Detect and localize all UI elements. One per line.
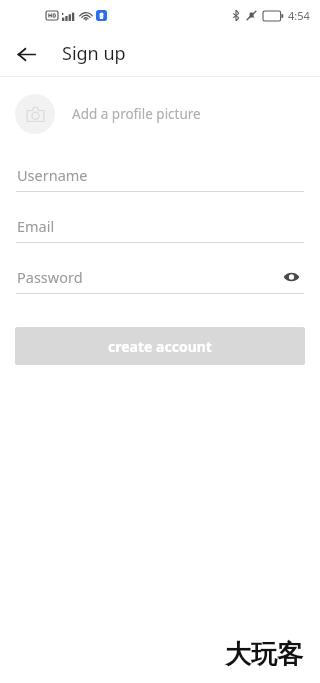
staticText: Password: [17, 267, 83, 287]
staticText: Username: [17, 165, 88, 185]
staticText: 4:54: [288, 8, 310, 23]
button[interactable]: Email: [16, 214, 304, 243]
staticText: 大玩客: [225, 638, 303, 671]
button[interactable]: Back: [9, 37, 43, 71]
button[interactable]: Show password: [278, 265, 304, 289]
button[interactable]: Add a profile picture: [15, 94, 305, 134]
staticText: create account: [108, 337, 212, 356]
staticText: Sign up: [62, 41, 126, 66]
button[interactable]: Password: [16, 265, 304, 294]
button[interactable]: Username: [16, 163, 304, 192]
button[interactable]: create account: [15, 327, 305, 365]
staticText: Email: [17, 216, 55, 236]
staticText: Add a profile picture: [72, 105, 201, 123]
